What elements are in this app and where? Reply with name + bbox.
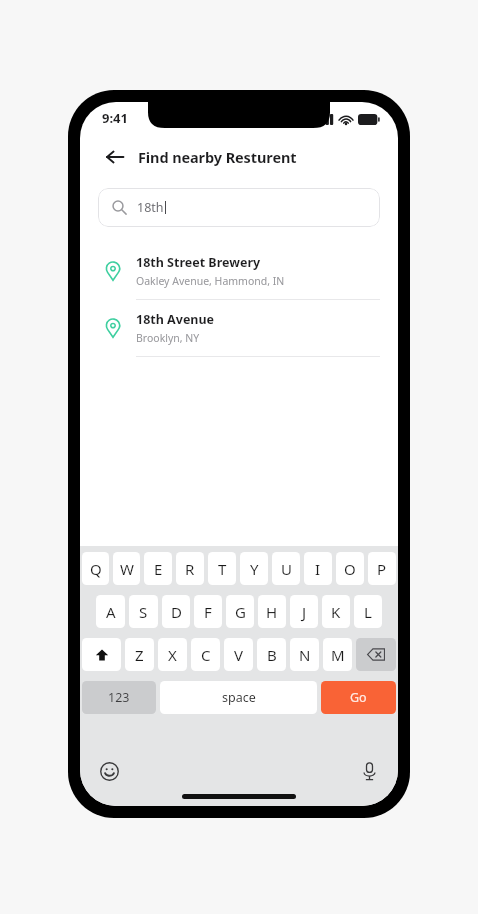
staticText: V xyxy=(234,645,244,665)
button[interactable]: R xyxy=(176,552,204,585)
button[interactable]: L xyxy=(354,595,382,628)
staticText: W xyxy=(120,559,134,579)
button[interactable]: U xyxy=(272,552,300,585)
button[interactable]: Backspace xyxy=(356,638,396,671)
staticText: E xyxy=(154,559,163,579)
button[interactable]: H xyxy=(258,595,286,628)
button[interactable]: Voice input xyxy=(356,758,382,784)
staticText: H xyxy=(266,602,278,622)
button[interactable]: P xyxy=(368,552,396,585)
staticText: B xyxy=(267,645,277,665)
staticText: K xyxy=(331,602,341,622)
staticText: 18th Avenue xyxy=(136,311,215,328)
button[interactable]: X xyxy=(158,638,187,671)
staticText: M xyxy=(331,645,345,665)
button[interactable]: F xyxy=(194,595,222,628)
staticText: Y xyxy=(250,559,259,579)
staticText: J xyxy=(302,602,307,622)
staticText: A xyxy=(106,602,116,622)
staticText: Z xyxy=(135,645,144,665)
button[interactable]: Z xyxy=(125,638,154,671)
button[interactable]: Shift xyxy=(82,638,121,671)
button[interactable]: S xyxy=(129,595,158,628)
button[interactable]: Q xyxy=(82,552,109,585)
staticText: X xyxy=(168,645,177,665)
staticText: I xyxy=(315,559,321,579)
staticText: T xyxy=(218,559,227,579)
button[interactable]: N xyxy=(290,638,319,671)
staticText: P xyxy=(377,559,387,579)
button[interactable]: Y xyxy=(240,552,268,585)
staticText: C xyxy=(201,645,211,665)
staticText: S xyxy=(139,602,148,622)
button[interactable]: 18th Street Brewery xyxy=(80,243,398,300)
button[interactable]: space xyxy=(160,681,317,714)
staticText: R xyxy=(185,559,195,579)
button[interactable]: M xyxy=(323,638,352,671)
staticText: Q xyxy=(90,559,102,579)
staticText: 18th Street Brewery xyxy=(136,254,261,271)
staticText: N xyxy=(299,645,311,665)
button[interactable]: Go xyxy=(321,681,396,714)
staticText: F xyxy=(204,602,212,622)
button[interactable]: D xyxy=(162,595,190,628)
button[interactable]: Back xyxy=(100,142,130,172)
staticText: 18th xyxy=(137,199,164,216)
button[interactable]: 123 xyxy=(82,681,156,714)
button[interactable]: V xyxy=(224,638,253,671)
staticText: O xyxy=(344,559,356,579)
button[interactable]: 18th Avenue xyxy=(80,300,398,357)
staticText: 123 xyxy=(108,689,130,706)
button[interactable]: C xyxy=(191,638,220,671)
button[interactable]: W xyxy=(113,552,140,585)
staticText: D xyxy=(171,602,182,622)
button[interactable]: T xyxy=(208,552,236,585)
staticText: G xyxy=(235,602,246,622)
button[interactable]: A xyxy=(96,595,125,628)
staticText: Brooklyn, NY xyxy=(136,331,200,345)
button[interactable]: J xyxy=(290,595,318,628)
button[interactable]: O xyxy=(336,552,364,585)
staticText: Find nearby Resturent xyxy=(138,147,297,167)
staticText: L xyxy=(364,602,372,622)
button[interactable]: G xyxy=(226,595,254,628)
staticText: Oakley Avenue, Hammond, IN xyxy=(136,274,285,288)
staticText: space xyxy=(222,689,256,706)
button[interactable]: B xyxy=(257,638,286,671)
staticText: U xyxy=(281,559,292,579)
staticText: Go xyxy=(350,689,367,706)
button[interactable]: K xyxy=(322,595,350,628)
button[interactable]: 18th xyxy=(98,188,380,227)
button[interactable]: E xyxy=(144,552,172,585)
staticText: 9:41 xyxy=(102,109,128,127)
button[interactable]: Emoji xyxy=(96,758,122,784)
button[interactable]: I xyxy=(304,552,332,585)
